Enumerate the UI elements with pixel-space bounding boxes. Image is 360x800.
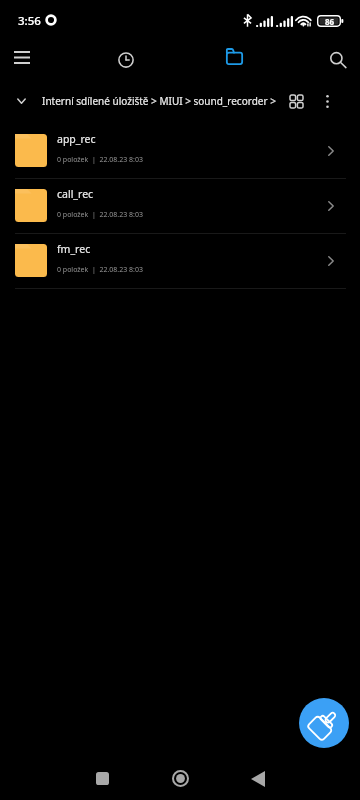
staticText: 0 položek | 22.08.23 8:03 (57, 265, 143, 275)
button[interactable]: app_rec (0, 123, 360, 178)
staticText: fm_rec (57, 242, 91, 256)
staticText: call_rec (57, 187, 94, 201)
button[interactable]: Clean up (299, 698, 349, 748)
staticText: 0 položek | 22.08.23 8:03 (57, 210, 143, 220)
staticText: 86 (325, 16, 335, 27)
staticText: 3:56 (18, 13, 41, 29)
button[interactable]: Search (318, 40, 358, 80)
button[interactable]: Files (214, 36, 254, 76)
staticText: app_rec (57, 132, 96, 146)
button[interactable]: Recent files (106, 40, 146, 80)
button[interactable]: Interní sdílené úložiště > MIUI > sound_… (42, 94, 276, 108)
button[interactable]: fm_rec (0, 233, 360, 288)
button[interactable]: More options (313, 87, 341, 115)
button[interactable]: Expand path (7, 87, 35, 115)
staticText: Interní sdílené úložiště > MIUI > sound_… (42, 94, 276, 108)
button[interactable]: Grid view (282, 87, 310, 115)
button[interactable]: call_rec (0, 178, 360, 233)
button[interactable]: Back (235, 756, 280, 800)
button[interactable]: Home (158, 756, 203, 800)
button[interactable]: Recent apps (80, 756, 125, 800)
button[interactable]: Menu (2, 44, 42, 70)
staticText: 0 položek | 22.08.23 8:03 (57, 155, 143, 165)
